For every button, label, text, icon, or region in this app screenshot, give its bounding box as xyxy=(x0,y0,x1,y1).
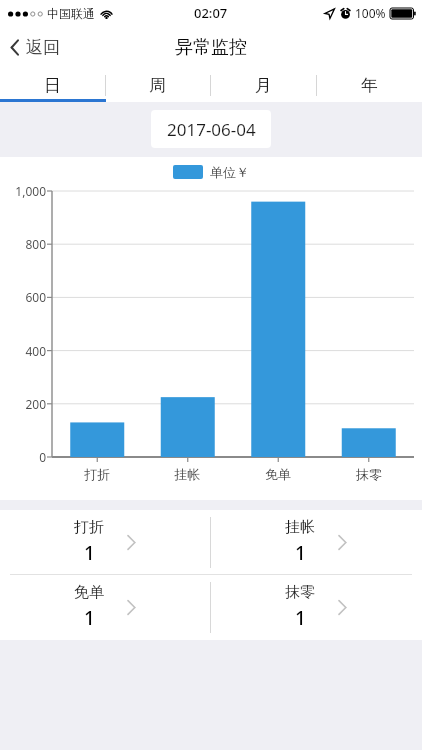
staticText: 日 xyxy=(44,75,61,96)
staticText: 年 xyxy=(361,75,378,96)
button[interactable]: 年 xyxy=(316,68,422,102)
button[interactable]: 月 xyxy=(210,68,316,102)
staticText: 打折 xyxy=(84,466,110,482)
staticText: 0 xyxy=(39,449,46,465)
other: 查看打折 详情 xyxy=(126,533,137,552)
staticText: 200 xyxy=(25,396,46,412)
staticText: 免单 xyxy=(74,583,104,602)
staticText: 400 xyxy=(25,343,46,359)
button[interactable]: 日 xyxy=(0,68,105,102)
staticText: 2017-06-04 xyxy=(167,118,256,141)
staticText: 中国联通 xyxy=(47,6,95,21)
staticText: 挂帐 xyxy=(174,466,200,482)
other: 查看抹零 详情 xyxy=(337,598,348,617)
staticText: 1 xyxy=(84,605,95,631)
staticText: 免单 xyxy=(265,466,291,482)
staticText: 02:07 xyxy=(194,4,228,22)
staticText: 600 xyxy=(25,289,46,305)
staticText: 1 xyxy=(295,540,306,566)
staticText: 挂帐 xyxy=(285,518,315,537)
staticText: 1 xyxy=(84,540,95,566)
button[interactable]: 免单 xyxy=(0,575,210,639)
staticText: 周 xyxy=(149,75,166,96)
staticText: 抹零 xyxy=(285,583,315,602)
other: 查看挂帐 详情 xyxy=(337,533,348,552)
button[interactable]: 返回 xyxy=(0,26,74,68)
staticText: 打折 xyxy=(74,518,104,537)
button[interactable]: 抹零 xyxy=(211,575,422,639)
staticText: 单位￥ xyxy=(210,164,249,180)
other: 查看免单 详情 xyxy=(126,598,137,617)
staticText: 异常监控 xyxy=(175,36,247,59)
staticText: 100% xyxy=(355,5,386,21)
staticText: 1,000 xyxy=(15,183,46,199)
staticText: 返回 xyxy=(26,37,60,58)
button[interactable]: 周 xyxy=(105,68,210,102)
staticText: 800 xyxy=(25,236,46,252)
button[interactable]: 打折 xyxy=(0,510,210,574)
button[interactable]: 2017-06-04 xyxy=(151,110,271,148)
button[interactable]: 挂帐 xyxy=(211,510,422,574)
staticText: 抹零 xyxy=(356,466,382,482)
staticText: 月 xyxy=(255,75,272,96)
staticText: 1 xyxy=(295,605,306,631)
